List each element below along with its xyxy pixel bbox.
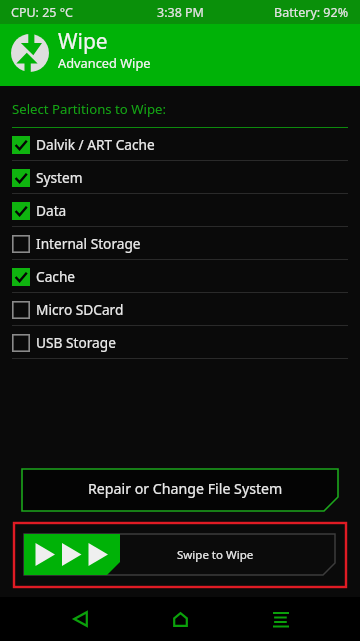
staticText: Cache xyxy=(36,267,76,286)
staticText: USB Storage xyxy=(36,333,116,352)
button[interactable]: Back xyxy=(56,597,105,641)
staticText: Battery: 92% xyxy=(274,4,349,21)
button[interactable]: USB Storage xyxy=(0,326,360,359)
button[interactable]: Data xyxy=(0,194,360,227)
button[interactable]: Repair or Change File System xyxy=(22,469,338,511)
staticText: Wipe xyxy=(58,27,108,56)
staticText: 3:38 PM xyxy=(157,4,204,21)
staticText: System xyxy=(36,168,83,187)
button[interactable]: Internal Storage xyxy=(0,227,360,260)
staticText: Repair or Change File System xyxy=(88,479,283,498)
staticText: Swipe to Wipe xyxy=(177,547,254,563)
staticText: Internal Storage xyxy=(36,234,141,253)
button[interactable]: Recent apps xyxy=(256,597,305,641)
button[interactable]: System xyxy=(0,161,360,194)
staticText: Advanced Wipe xyxy=(58,54,151,71)
staticText: Micro SDCard xyxy=(36,300,124,319)
staticText: Data xyxy=(36,201,67,220)
button[interactable]: Home xyxy=(156,597,205,641)
button[interactable]: Swipe to Wipe xyxy=(14,523,346,587)
button[interactable]: Dalvik / ART Cache xyxy=(0,128,360,161)
button[interactable]: Cache xyxy=(0,260,360,293)
staticText: CPU: 25 °C xyxy=(11,4,74,21)
button[interactable]: Micro SDCard xyxy=(0,293,360,326)
staticText: Dalvik / ART Cache xyxy=(36,135,155,154)
staticText: Select Partitions to Wipe: xyxy=(12,100,166,118)
